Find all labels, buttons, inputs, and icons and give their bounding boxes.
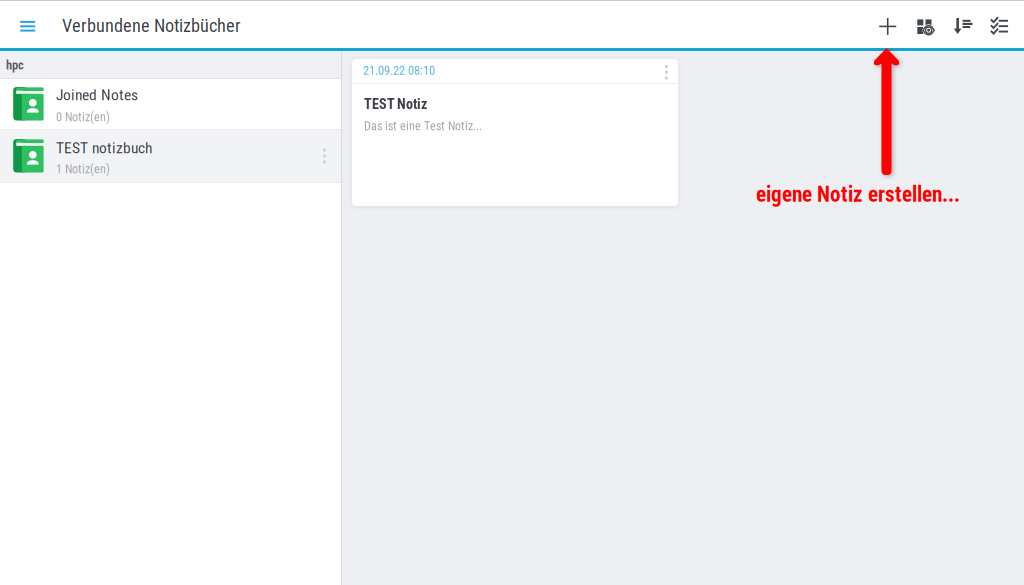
staticText: Das ist eine Test Notiz... <box>364 119 482 133</box>
button[interactable]: Mehrfachauswahl <box>986 2 1021 47</box>
staticText: hpc <box>6 58 24 72</box>
staticText: 21.09.22 08:10 <box>363 63 435 78</box>
button[interactable]: 21.09.22 08:10 <box>352 59 678 206</box>
staticText: 1 Notiz(en) <box>56 162 110 176</box>
button[interactable]: Joined Notes <box>0 79 341 129</box>
staticText: Verbundene Notizbücher <box>62 15 241 36</box>
staticText: TEST Notiz <box>364 96 427 113</box>
button[interactable]: Menü <box>9 2 47 48</box>
staticText: 0 Notiz(en) <box>56 110 110 124</box>
staticText: Joined Notes <box>56 86 138 104</box>
button[interactable]: TEST notizbuch <box>0 130 341 182</box>
staticText: TEST notizbuch <box>56 139 152 157</box>
staticText: eigene Notiz erstellen... <box>756 182 960 207</box>
button[interactable]: Neue Notiz erstellen <box>870 2 905 47</box>
button[interactable]: Sortieren <box>945 2 980 47</box>
button[interactable]: Ansicht wechseln <box>908 2 943 47</box>
